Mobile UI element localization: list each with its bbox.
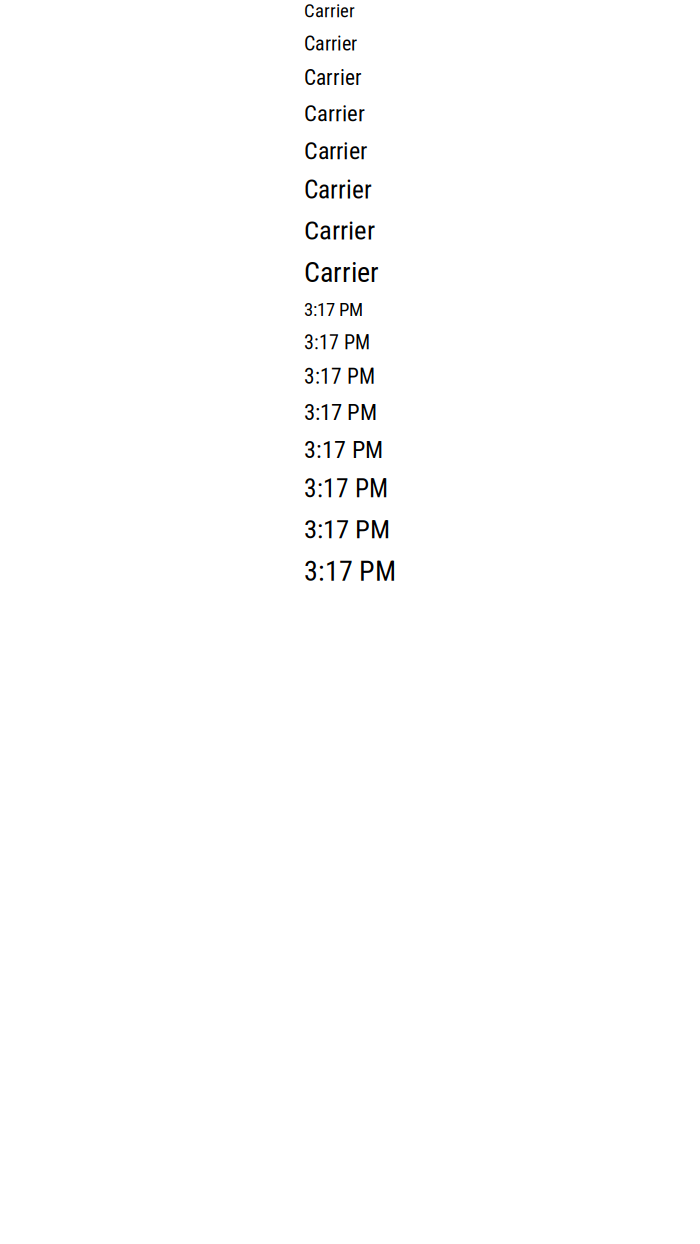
staticText: 3:17 PM (304, 436, 383, 464)
staticText: 3:17 PM (304, 474, 388, 503)
staticText: 3:17 PM (304, 399, 377, 426)
staticText: Carrier (304, 100, 365, 127)
staticText: 3:17 PM (304, 513, 390, 545)
staticText: Carrier (304, 32, 357, 55)
staticText: 3:17 PM (304, 555, 396, 587)
staticText: Carrier (304, 0, 355, 22)
staticText: Carrier (304, 215, 375, 246)
staticText: Carrier (304, 175, 372, 205)
staticText: Carrier (304, 65, 362, 90)
staticText: 3:17 PM (304, 331, 370, 354)
staticText: 3:17 PM (304, 364, 375, 389)
staticText: Carrier (304, 256, 379, 289)
staticText: 3:17 PM (304, 299, 363, 321)
staticText: Carrier (304, 137, 367, 165)
